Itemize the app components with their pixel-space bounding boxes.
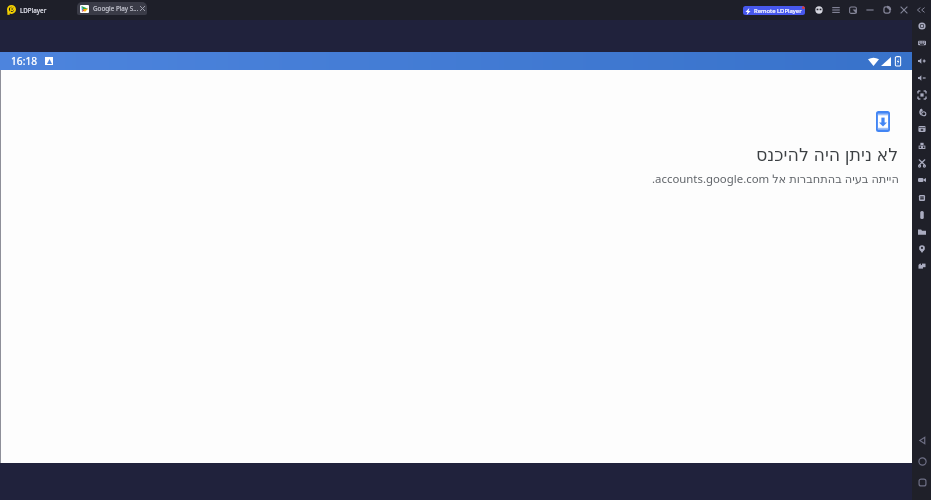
staticText: הייתה בעיה בהתחברות אל accounts.google.c… <box>652 171 899 187</box>
button[interactable]: Install APK <box>913 120 930 137</box>
button[interactable]: Home <box>913 452 931 470</box>
button[interactable]: Multi instance <box>913 103 930 120</box>
button[interactable]: Close <box>895 0 912 20</box>
staticText: לא ניתן היה להיכנס <box>756 142 899 166</box>
staticText: Google Play S... <box>93 4 139 13</box>
button[interactable]: Back <box>913 431 931 449</box>
button[interactable]: Volume up <box>913 52 930 69</box>
button[interactable]: Menu <box>827 0 844 20</box>
button[interactable]: Restore <box>844 0 861 20</box>
button[interactable]: Maximize <box>878 0 895 20</box>
button[interactable]: Volume down <box>913 69 930 86</box>
button[interactable]: More tools <box>913 257 930 274</box>
button[interactable]: Account <box>810 0 827 20</box>
button[interactable]: Rotate screen <box>913 17 930 34</box>
button[interactable]: Screenshot <box>913 154 930 171</box>
button[interactable]: Virtual keyboard <box>913 34 930 51</box>
staticText: LDPlayer <box>20 6 47 14</box>
button[interactable]: Close tab <box>138 2 147 15</box>
button[interactable]: Shake <box>913 206 930 223</box>
button[interactable]: Full screen <box>913 86 930 103</box>
button[interactable]: File manager <box>913 223 930 240</box>
button[interactable]: Shared folder <box>913 137 930 154</box>
button[interactable]: Operation recorder <box>913 189 930 206</box>
staticText: 16:18 <box>11 54 38 68</box>
button[interactable]: Remote LDPlayer <box>743 6 805 15</box>
button[interactable]: Virtual location <box>913 240 930 257</box>
button[interactable]: Google Play S... <box>77 2 147 15</box>
button[interactable]: Record screen <box>913 171 930 188</box>
staticText: Remote LDPlayer <box>754 7 802 15</box>
button[interactable]: Collapse <box>912 0 929 20</box>
button[interactable]: Recent apps <box>913 473 931 491</box>
button[interactable]: Minimize <box>861 0 878 20</box>
